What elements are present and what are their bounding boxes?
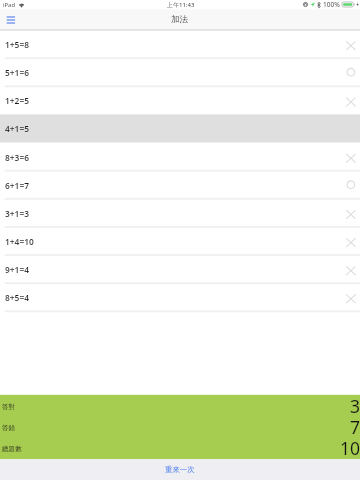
staticText: 3+1=3: [5, 208, 29, 219]
staticText: 1+5=8: [5, 39, 29, 50]
staticText: 9+1=4: [5, 264, 29, 275]
staticText: 4+1=5: [5, 123, 29, 134]
staticText: 7: [350, 415, 360, 436]
button[interactable]: 3+1=3: [0, 199, 360, 227]
staticText: 8+3=6: [5, 152, 29, 163]
button[interactable]: 8+5=4: [0, 283, 360, 311]
button[interactable]: 9+1=4: [0, 255, 360, 283]
staticText: 3: [350, 394, 360, 415]
button[interactable]: Menu: [4, 13, 18, 27]
button[interactable]: 6+1=7: [0, 171, 360, 199]
staticText: 5+1=6: [5, 67, 29, 78]
button[interactable]: 5+1=6: [0, 58, 360, 86]
button[interactable]: 4+1=5: [0, 114, 360, 142]
staticText: 上午11:43: [167, 1, 195, 9]
button[interactable]: 重來一次: [0, 459, 360, 480]
button[interactable]: 8+3=6: [0, 143, 360, 171]
staticText: 6+1=7: [5, 180, 29, 191]
staticText: iPad: [3, 1, 16, 9]
button[interactable]: 1+4=10: [0, 227, 360, 255]
button[interactable]: 1+2=5: [0, 86, 360, 114]
staticText: 答錯: [2, 424, 16, 432]
staticText: 8+5=4: [5, 292, 29, 303]
staticText: 答對: [2, 403, 16, 411]
staticText: 1+2=5: [5, 95, 29, 106]
staticText: 1+4=10: [5, 236, 34, 247]
staticText: 加法: [171, 14, 189, 25]
staticText: 10: [340, 436, 360, 457]
staticText: 重來一次: [165, 465, 195, 474]
button[interactable]: 1+5=8: [0, 30, 360, 58]
staticText: 總題數: [2, 445, 22, 453]
staticText: 100%: [323, 0, 340, 9]
